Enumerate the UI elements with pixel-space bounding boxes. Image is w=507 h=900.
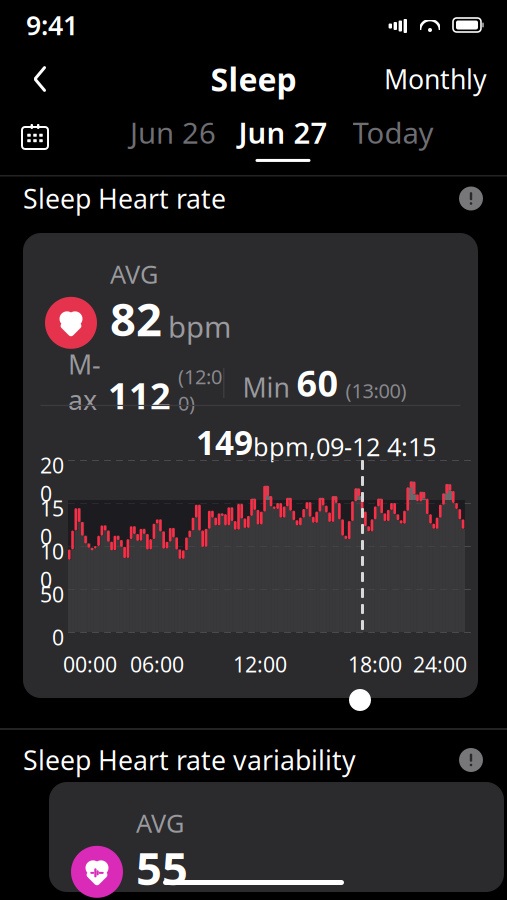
staticText: bpm [168, 307, 231, 346]
staticText: 12:00 [233, 650, 287, 678]
staticText: Monthly [384, 61, 487, 97]
staticText: (13:00) [345, 377, 406, 404]
button[interactable]: Jun 27 [228, 113, 338, 162]
staticText: bpm,09-12 4:15 [253, 430, 436, 463]
staticText: Today [352, 113, 433, 152]
staticText: Jun 27 [238, 113, 327, 152]
button[interactable]: Back [20, 59, 60, 99]
button[interactable]: Today [338, 113, 448, 162]
staticText: 112 [108, 371, 171, 419]
staticText: 82 [110, 289, 162, 349]
staticText: 0 [52, 623, 64, 651]
staticText: 150 [40, 494, 64, 551]
staticText: (12:00) [178, 363, 222, 416]
staticText: 149 [196, 420, 253, 464]
staticText: 9:41 [26, 7, 78, 43]
staticText: Max [68, 346, 101, 417]
button[interactable]: More information [456, 745, 486, 775]
staticText: 00:00 [63, 650, 117, 678]
staticText: 24:00 [413, 650, 467, 678]
button[interactable]: Jun 26 [118, 113, 228, 162]
button[interactable]: More information [456, 183, 486, 213]
staticText: AVG [136, 806, 184, 840]
button[interactable]: Monthly [384, 53, 487, 105]
staticText: Min [242, 369, 289, 405]
staticText: Sleep Heart rate [23, 181, 226, 216]
staticText: 200 [40, 451, 64, 508]
staticText: Sleep Heart rate variability [23, 742, 356, 778]
staticText: 100 [40, 537, 64, 594]
button[interactable]: Calendar [14, 123, 56, 151]
staticText: 60 [296, 359, 338, 407]
staticText: Jun 26 [130, 113, 216, 152]
staticText: 18:00 [348, 650, 402, 678]
staticText: Sleep [210, 58, 296, 100]
staticText: 55 [136, 838, 188, 898]
staticText: 50 [40, 580, 64, 608]
staticText: 06:00 [130, 650, 184, 678]
staticText: AVG [110, 257, 158, 291]
